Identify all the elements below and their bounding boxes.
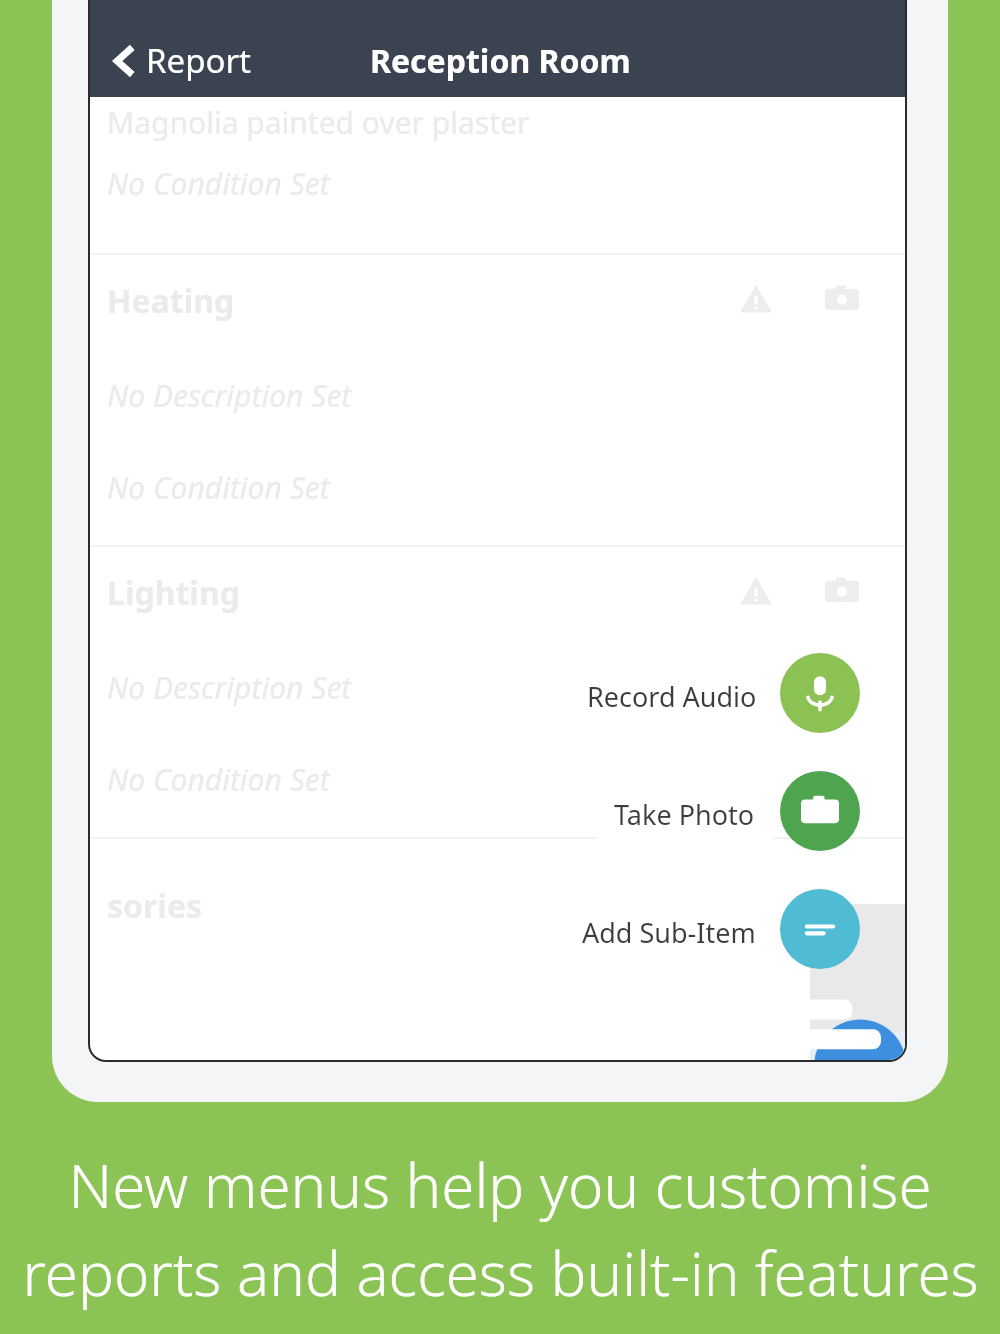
staticText: No Condition Set <box>107 467 330 508</box>
staticText: Add Sub-Item <box>582 914 756 951</box>
button[interactable]: Add Sub-Item <box>780 889 860 969</box>
staticText: reports and access built-in features <box>22 1232 979 1314</box>
staticText: No Description Set <box>107 375 352 416</box>
button[interactable]: Heating <box>90 255 905 545</box>
button[interactable]: Lighting <box>90 547 905 837</box>
staticText: Report <box>146 38 251 83</box>
button[interactable]: Report <box>106 32 257 89</box>
button[interactable]: Take Photo <box>780 771 860 851</box>
staticText: New menus help you customise <box>68 1144 932 1226</box>
button[interactable]: sories <box>90 839 905 999</box>
staticText: Heating <box>107 279 235 323</box>
button[interactable]: Magnolia painted over plaster <box>90 85 905 253</box>
staticText: No Condition Set <box>107 759 330 800</box>
button[interactable]: Issue <box>730 273 782 325</box>
button[interactable]: Issue <box>730 565 782 617</box>
staticText: Lighting <box>107 571 240 615</box>
staticText: Reception Room <box>370 39 631 83</box>
staticText: Magnolia painted over plaster <box>107 102 530 143</box>
button[interactable]: Photo <box>816 273 868 325</box>
staticText: Take Photo <box>614 796 755 833</box>
button[interactable]: Take Photo <box>595 785 774 844</box>
staticText: No Condition Set <box>107 163 330 204</box>
staticText: Record Audio <box>587 678 757 715</box>
staticText: No Description Set <box>107 667 352 708</box>
button[interactable]: Record Audio <box>780 653 860 733</box>
button[interactable]: Add Sub-Item <box>563 903 775 962</box>
staticText: sories <box>107 884 203 928</box>
button[interactable]: Record Audio <box>568 667 776 726</box>
button[interactable]: Photo <box>816 565 868 617</box>
